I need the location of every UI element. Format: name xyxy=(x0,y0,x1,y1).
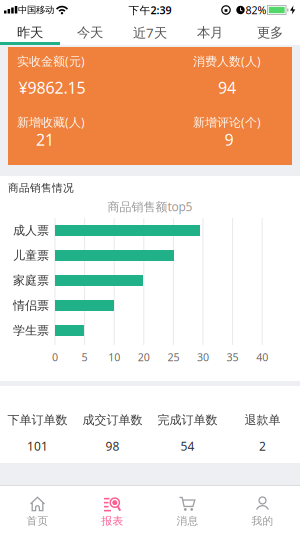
button[interactable]: 我的 xyxy=(225,491,300,527)
staticText: 消息 xyxy=(176,514,198,527)
button[interactable]: 近7天 xyxy=(120,20,180,45)
staticText: 30 xyxy=(197,350,209,364)
staticText: 5 xyxy=(82,350,88,364)
staticText: 35 xyxy=(227,350,239,364)
staticText: 25 xyxy=(167,350,179,364)
staticText: 成交订单数 xyxy=(82,413,142,427)
staticText: 商品销售情况 xyxy=(8,181,74,194)
staticText: 昨天 xyxy=(17,24,43,41)
staticText: 21 xyxy=(36,129,54,150)
staticText: 10 xyxy=(108,350,120,364)
button[interactable]: 首页 xyxy=(0,491,75,527)
staticText: 新增评论(个) xyxy=(193,114,261,130)
staticText: 商品销售额top5 xyxy=(107,198,192,214)
staticText: 本月 xyxy=(197,24,223,41)
staticText: ¥9862.15 xyxy=(18,77,85,98)
staticText: 40 xyxy=(256,350,268,364)
staticText: 101 xyxy=(27,438,48,454)
button[interactable]: 消息 xyxy=(150,491,225,527)
button[interactable]: 更多 xyxy=(240,20,300,45)
staticText: 首页 xyxy=(26,514,48,527)
button[interactable]: 报表 xyxy=(75,491,150,527)
staticText: 消费人数(人) xyxy=(193,53,261,69)
staticText: 82% xyxy=(245,3,266,17)
staticText: 更多 xyxy=(257,24,283,41)
staticText: 近7天 xyxy=(133,24,167,41)
staticText: 94 xyxy=(218,77,236,98)
staticText: 下单订单数 xyxy=(7,413,67,427)
button[interactable]: 本月 xyxy=(180,20,240,45)
staticText: 学生票 xyxy=(13,323,49,338)
staticText: 报表 xyxy=(101,514,123,527)
staticText: 完成订单数 xyxy=(157,413,217,427)
staticText: 退款单 xyxy=(244,413,280,427)
staticText: 9 xyxy=(224,129,233,150)
staticText: 情侣票 xyxy=(13,298,49,313)
staticText: 54 xyxy=(180,438,194,454)
staticText: 我的 xyxy=(251,514,273,527)
button[interactable]: 昨天 xyxy=(0,20,60,45)
staticText: 新增收藏(人) xyxy=(17,114,85,130)
staticText: 中国移动 xyxy=(18,4,54,16)
staticText: 2 xyxy=(259,438,266,454)
staticText: 98 xyxy=(105,438,119,454)
staticText: 20 xyxy=(138,350,150,364)
staticText: 家庭票 xyxy=(13,273,49,288)
staticText: 成人票 xyxy=(13,223,49,238)
staticText: 0 xyxy=(52,350,58,364)
staticText: 实收金额(元) xyxy=(17,53,85,69)
staticText: 今天 xyxy=(77,24,103,41)
staticText: 儿童票 xyxy=(13,248,49,263)
button[interactable]: 今天 xyxy=(60,20,120,45)
staticText: 下午2:39 xyxy=(128,3,171,17)
